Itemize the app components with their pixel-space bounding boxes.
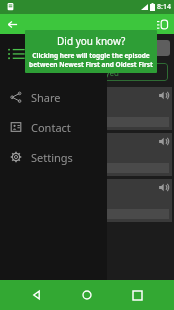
staticText: ...nload	[47, 118, 70, 127]
staticText: Clicking here will toggle the episode or…	[29, 51, 153, 60]
button[interactable]: Did you know?	[25, 30, 157, 73]
button[interactable]: ...g Novels	[44, 133, 172, 176]
button[interactable]: ...nload	[47, 117, 169, 127]
staticText: ...nload	[47, 164, 70, 173]
button[interactable]: ...nload	[44, 179, 172, 222]
button[interactable]: Episodes	[8, 44, 28, 64]
button[interactable]: Played	[44, 63, 168, 81]
button[interactable]: Recent apps	[124, 282, 150, 308]
staticText	[47, 182, 158, 193]
button[interactable]: Settings	[0, 142, 107, 172]
button[interactable]: ...nload	[47, 163, 169, 173]
staticText: Share	[31, 90, 61, 105]
button[interactable]: Back	[24, 282, 50, 308]
staticText: 8:14	[157, 2, 171, 12]
staticText: Settings	[31, 150, 73, 165]
staticText: Played	[94, 67, 119, 78]
button[interactable]: Share	[0, 82, 107, 112]
staticText: Did you know?	[57, 34, 126, 48]
staticText: ...g Novels	[47, 136, 158, 147]
button[interactable]: Home	[74, 282, 100, 308]
staticText: ...ow 31	[47, 90, 158, 101]
button[interactable]: Back	[4, 16, 20, 32]
staticText: between Newest First and Oldest First	[29, 60, 153, 69]
button[interactable]: ...ow 31	[44, 87, 172, 130]
button[interactable]: Sort order	[154, 16, 170, 32]
button[interactable]: ...nload	[47, 209, 169, 219]
staticText: Contact	[31, 120, 71, 135]
button[interactable]: Contact	[0, 112, 107, 142]
